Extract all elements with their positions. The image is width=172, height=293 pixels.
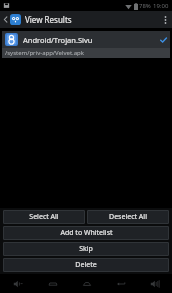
staticText: Skip — [79, 244, 93, 254]
button[interactable]: Android/Trojan.Sivu — [2, 31, 170, 58]
button[interactable]: Select All — [3, 210, 85, 224]
button[interactable]: Deselect All — [87, 210, 169, 224]
staticText: View Results — [25, 14, 72, 25]
button[interactable]: Delete — [3, 258, 169, 272]
button[interactable]: Add to Whitelist — [3, 226, 169, 240]
staticText: Android/Trojan.Sivu — [23, 35, 93, 45]
staticText: Delete — [75, 260, 97, 270]
staticText: Deselect All — [109, 212, 147, 222]
staticText: 78% — [139, 2, 151, 10]
button[interactable]: Home — [70, 274, 104, 293]
staticText: /system/priv-app/Velvet.apk — [5, 49, 84, 57]
button[interactable]: Skip — [3, 242, 169, 256]
button[interactable]: Navigate up — [0, 11, 23, 28]
staticText: Add to Whitelist — [60, 228, 113, 238]
button[interactable]: Recent apps — [35, 274, 70, 293]
staticText: Select All — [29, 212, 59, 222]
button[interactable]: More options — [158, 11, 172, 28]
button[interactable]: Back — [104, 274, 138, 293]
button[interactable]: Volume up — [138, 274, 172, 293]
button[interactable]: Volume down — [0, 274, 35, 293]
staticText: 19:00 — [153, 2, 169, 10]
